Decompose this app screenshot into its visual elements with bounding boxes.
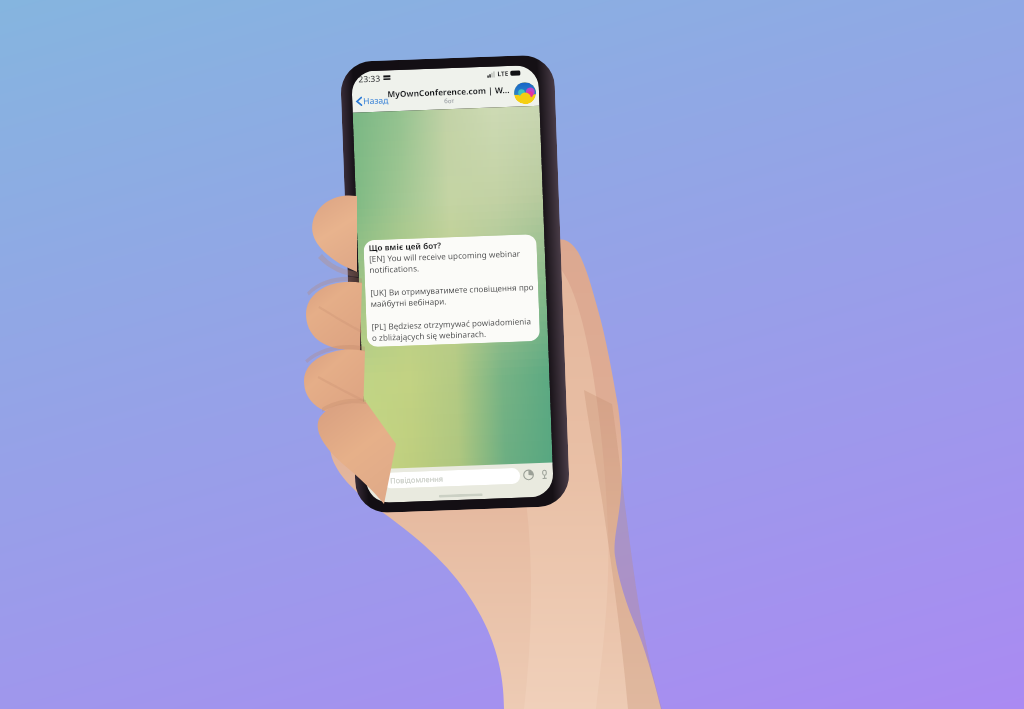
staticText: 23:33 [358, 73, 381, 85]
staticText: [UK] Ви отримуватимете сповіщення про ма… [370, 281, 535, 310]
staticText: [PL] Będziesz otrzymywać powiadomienia o… [371, 315, 536, 344]
button[interactable]: Record voice message [538, 468, 551, 481]
staticText: MyOwnConference.com | W… [387, 84, 510, 99]
button[interactable]: Що вміє цей бот? [363, 234, 540, 347]
staticText: [EN] You will receive upcoming webinar n… [369, 247, 533, 276]
button[interactable]: Повідомлення [383, 468, 520, 489]
button[interactable]: Chat avatar [514, 82, 536, 105]
staticText: бот [444, 97, 454, 105]
staticText: Назад [363, 94, 389, 107]
button[interactable]: Stickers [522, 468, 535, 482]
staticText: Повідомлення [390, 474, 443, 485]
staticText: Що вміє цей бот? [368, 239, 442, 253]
button[interactable]: Назад [352, 92, 393, 110]
staticText: LTE [497, 69, 508, 78]
